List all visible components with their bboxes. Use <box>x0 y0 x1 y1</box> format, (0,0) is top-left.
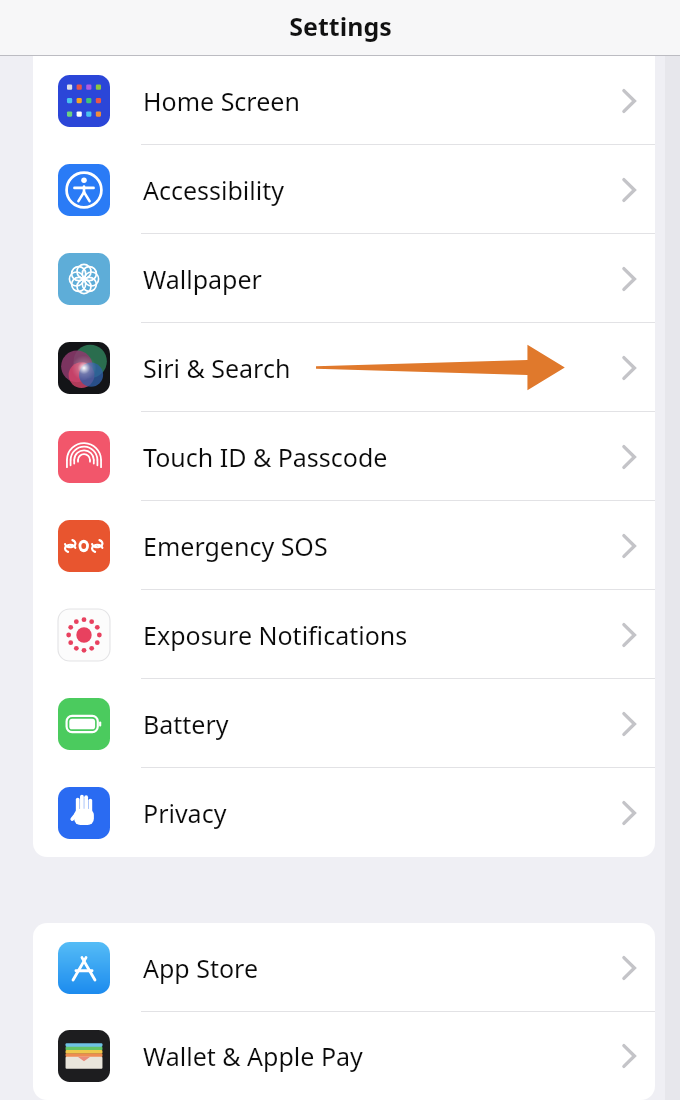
other: Open Emergency SOS <box>621 533 637 559</box>
other: Open Wallet & Apple Pay <box>621 1043 637 1069</box>
button[interactable]: Home Screen <box>33 56 655 145</box>
other: Open Accessibility <box>621 177 637 203</box>
other: Open App Store <box>621 955 637 981</box>
button[interactable]: App Store <box>33 923 655 1012</box>
button[interactable]: Emergency SOS <box>33 501 655 590</box>
button[interactable]: Battery <box>33 679 655 768</box>
staticText: Wallet & Apple Pay <box>143 1039 363 1073</box>
staticText: Touch ID & Passcode <box>143 440 388 474</box>
other: Open Wallpaper <box>621 266 637 292</box>
other: Open Battery <box>621 711 637 737</box>
button[interactable]: Wallpaper <box>33 234 655 323</box>
other: Open Home Screen <box>621 88 637 114</box>
other: Open Touch ID & Passcode <box>621 444 637 470</box>
other: Open Siri & Search <box>621 355 637 381</box>
button[interactable]: Exposure Notifications <box>33 590 655 679</box>
staticText: Exposure Notifications <box>143 618 408 652</box>
staticText: Siri & Search <box>143 351 291 385</box>
other: Open Privacy <box>621 800 637 826</box>
button[interactable]: Siri & Search <box>33 323 655 412</box>
other: Open Exposure Notifications <box>621 622 637 648</box>
staticText: Home Screen <box>143 84 300 118</box>
button[interactable]: Privacy <box>33 768 655 857</box>
staticText: Privacy <box>143 796 227 830</box>
button[interactable]: Wallet & Apple Pay <box>33 1012 655 1100</box>
staticText: Emergency SOS <box>143 529 328 563</box>
staticText: Settings <box>289 9 392 43</box>
staticText: Accessibility <box>143 173 284 207</box>
staticText: App Store <box>143 951 259 985</box>
button[interactable]: Touch ID & Passcode <box>33 412 655 501</box>
button[interactable]: Accessibility <box>33 145 655 234</box>
staticText: Battery <box>143 707 229 741</box>
staticText: Wallpaper <box>143 262 262 296</box>
